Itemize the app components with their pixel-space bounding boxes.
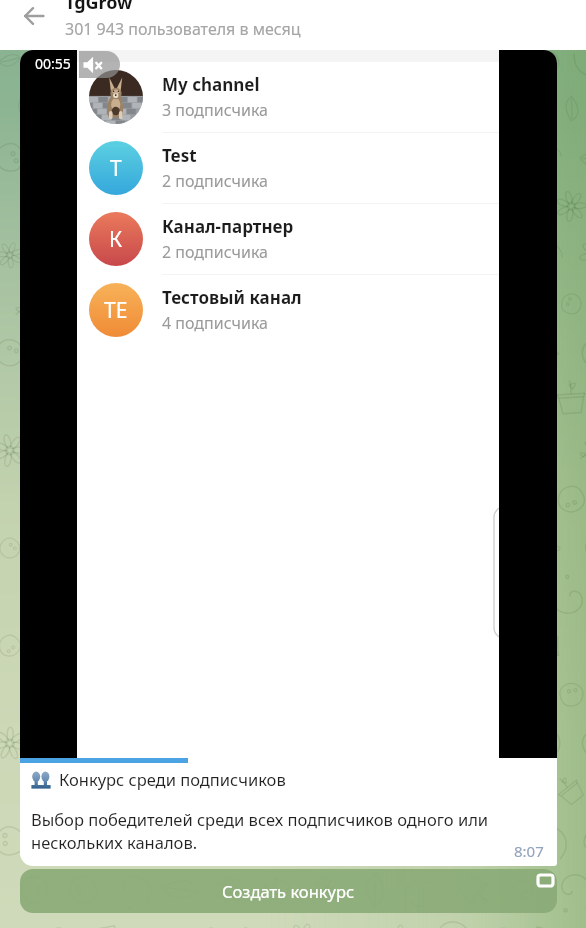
staticText: К bbox=[109, 225, 123, 254]
staticText: Конкурс среди подписчиков bbox=[59, 768, 286, 790]
staticText: My channel bbox=[162, 73, 260, 96]
staticText: 2 подписчика bbox=[162, 170, 269, 192]
staticText: T bbox=[110, 154, 122, 183]
staticText: TgGrow bbox=[65, 0, 133, 15]
staticText: 2 подписчика bbox=[162, 241, 269, 263]
staticText: 8:07 bbox=[514, 841, 544, 861]
staticText: Создать конкурс bbox=[222, 880, 355, 902]
staticText: 301 943 пользователя в месяц bbox=[65, 18, 301, 40]
button[interactable]: My channel bbox=[20, 50, 557, 866]
staticText: Выбор победителей среди всех подписчиков… bbox=[31, 808, 547, 854]
staticText: Тестовый канал bbox=[162, 286, 302, 309]
button[interactable]: Open in app bbox=[536, 871, 556, 891]
button[interactable]: Back bbox=[10, 0, 58, 40]
button[interactable]: Создать конкурс bbox=[20, 869, 557, 913]
staticText: 4 подписчика bbox=[162, 312, 269, 334]
button[interactable]: T bbox=[77, 133, 499, 203]
staticText: Канал-партнер bbox=[162, 215, 294, 238]
button[interactable]: К bbox=[77, 204, 499, 274]
staticText: 3 подписчика bbox=[162, 99, 269, 121]
button[interactable]: ТЕ bbox=[77, 275, 499, 345]
staticText: 00:55 bbox=[35, 54, 71, 73]
button[interactable]: My channel bbox=[77, 62, 499, 132]
staticText: ТЕ bbox=[104, 296, 128, 325]
other: Muted bbox=[79, 51, 120, 78]
staticText: Test bbox=[162, 144, 197, 167]
